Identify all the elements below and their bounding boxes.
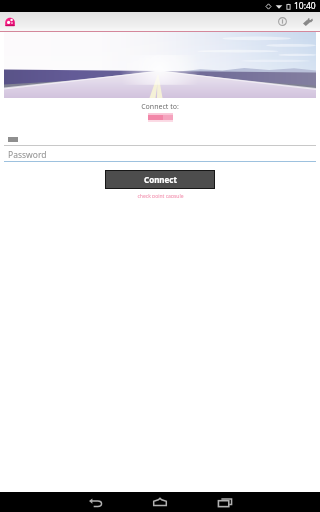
- button[interactable]: Password: [4, 149, 316, 162]
- staticText: 10:40: [294, 0, 316, 12]
- button[interactable]: Info: [273, 12, 292, 31]
- staticText: Password: [8, 149, 47, 161]
- button[interactable]: Connect: [106, 171, 214, 188]
- staticText: Connect to:: [141, 102, 179, 109]
- button[interactable]: Settings: [298, 12, 317, 31]
- staticText: check point capsule: [137, 193, 184, 198]
- button[interactable]: Home: [144, 492, 176, 512]
- button[interactable]: Recent apps: [209, 492, 241, 512]
- button[interactable]: [4, 133, 316, 146]
- button[interactable]: Back: [79, 492, 111, 512]
- staticText: Connect: [144, 174, 177, 185]
- button[interactable]: App logo: [1, 12, 19, 30]
